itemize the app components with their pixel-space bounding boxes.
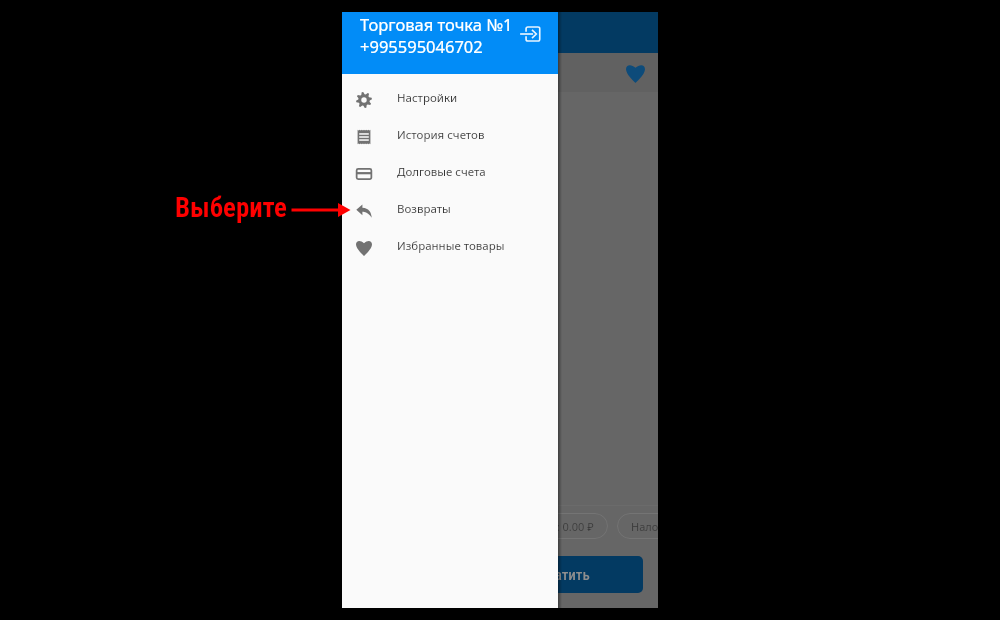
button[interactable]: Возвраты	[342, 190, 558, 227]
staticText: Настройки	[397, 90, 458, 106]
button[interactable]: Долговые счета	[342, 153, 558, 190]
staticText: Торговая точка №1	[360, 13, 513, 35]
staticText: Долговые счета	[397, 164, 486, 180]
staticText: История счетов	[397, 127, 485, 143]
button[interactable]: Налог: 0.00 ₽	[617, 513, 658, 539]
button[interactable]: Logout	[520, 22, 544, 46]
button[interactable]: Выбрать и оплатить	[357, 556, 643, 593]
staticText: Выбрать и оплатить	[463, 566, 590, 584]
staticText: Налог: 0.00 ₽	[631, 519, 658, 534]
staticText: Возвраты	[397, 201, 451, 217]
staticText: +995595046702	[360, 35, 483, 57]
staticText: Выберите	[175, 192, 287, 223]
button[interactable]: Favourites	[622, 60, 648, 86]
staticText: Сумма: 0.00 ₽	[521, 519, 594, 534]
staticText: Избранные товары	[397, 238, 505, 254]
button[interactable]: Настройки	[342, 79, 558, 116]
button[interactable]: История счетов	[342, 116, 558, 153]
button[interactable]: Сумма: 0.00 ₽	[507, 513, 608, 539]
button[interactable]: Избранные товары	[342, 227, 558, 264]
